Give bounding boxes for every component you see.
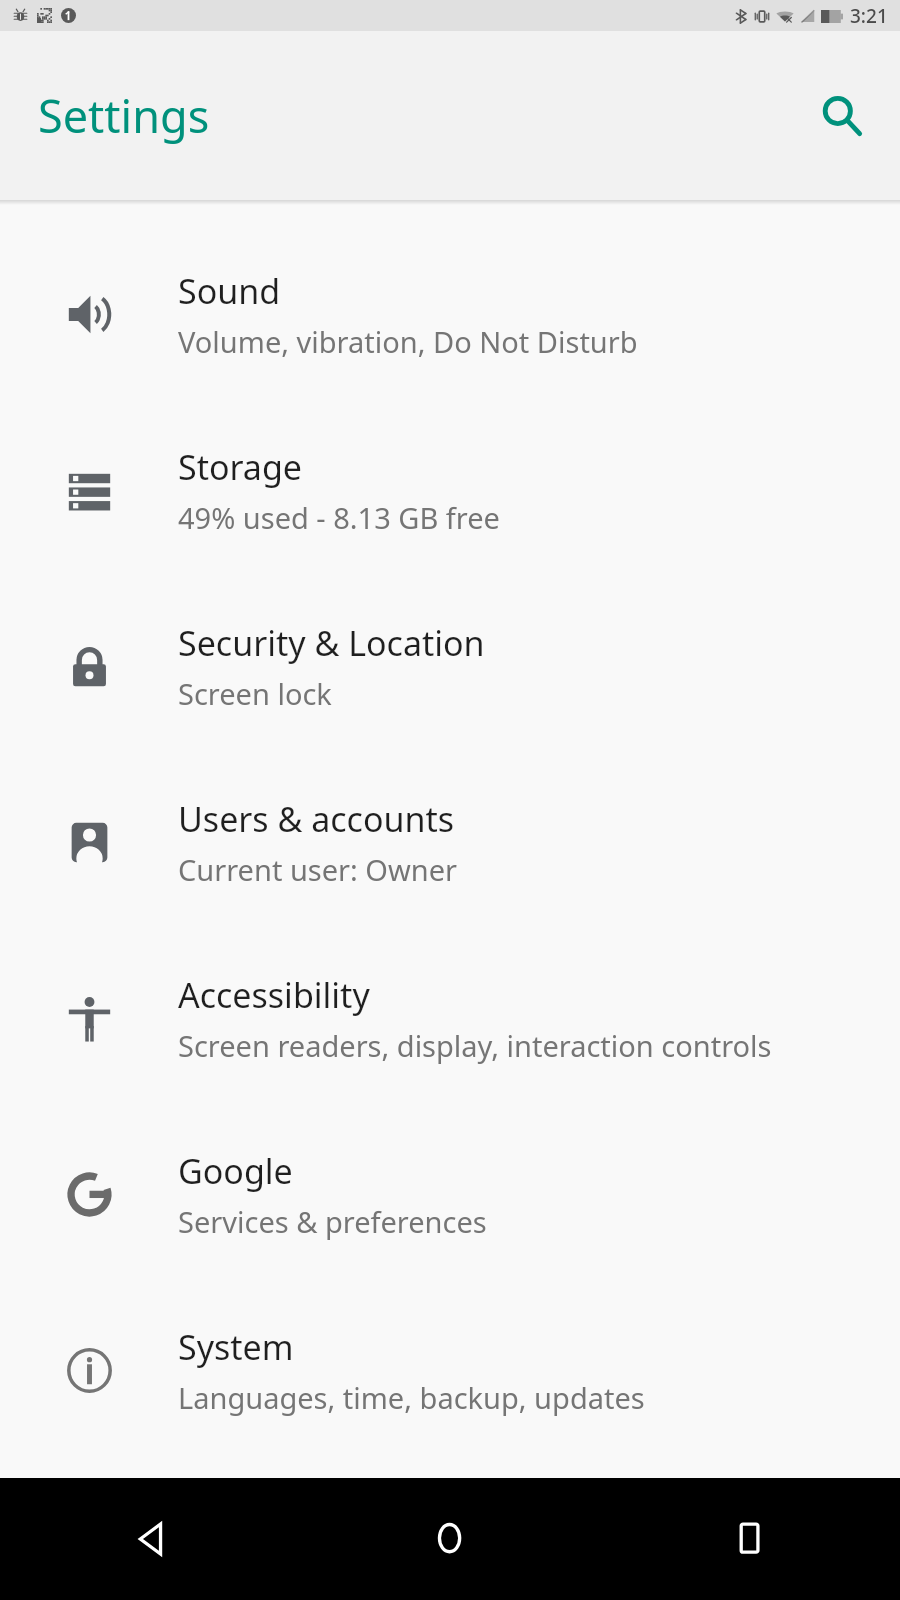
staticText: Services & preferences <box>178 1202 487 1241</box>
staticText: Accessibility <box>178 972 370 1018</box>
button[interactable]: Security & Location <box>0 578 900 754</box>
staticText: Screen readers, display, interaction con… <box>178 1026 772 1065</box>
button[interactable]: Search <box>806 80 878 152</box>
staticText: 49% used - 8.13 GB free <box>178 498 500 537</box>
button[interactable]: Users & accounts <box>0 754 900 930</box>
staticText: System <box>178 1324 294 1370</box>
staticText: Languages, time, backup, updates <box>178 1378 645 1417</box>
staticText: Settings <box>38 85 210 146</box>
button[interactable]: Back <box>0 1478 300 1600</box>
staticText: Current user: Owner <box>178 850 458 889</box>
button[interactable]: Sound <box>0 226 900 402</box>
button[interactable]: Storage <box>0 402 900 578</box>
staticText: Google <box>178 1148 293 1194</box>
staticText: Security & Location <box>178 620 485 666</box>
button[interactable]: Google <box>0 1106 900 1282</box>
staticText: 3:21 <box>850 3 888 29</box>
staticText: Screen lock <box>178 674 332 713</box>
staticText: Volume, vibration, Do Not Disturb <box>178 322 638 361</box>
staticText: Users & accounts <box>178 796 455 842</box>
button[interactable]: Accessibility <box>0 930 900 1106</box>
staticText: Storage <box>178 444 303 490</box>
staticText: Sound <box>178 268 281 314</box>
button[interactable]: Home <box>300 1478 600 1600</box>
button[interactable]: Recents <box>600 1478 900 1600</box>
button[interactable]: System <box>0 1282 900 1458</box>
